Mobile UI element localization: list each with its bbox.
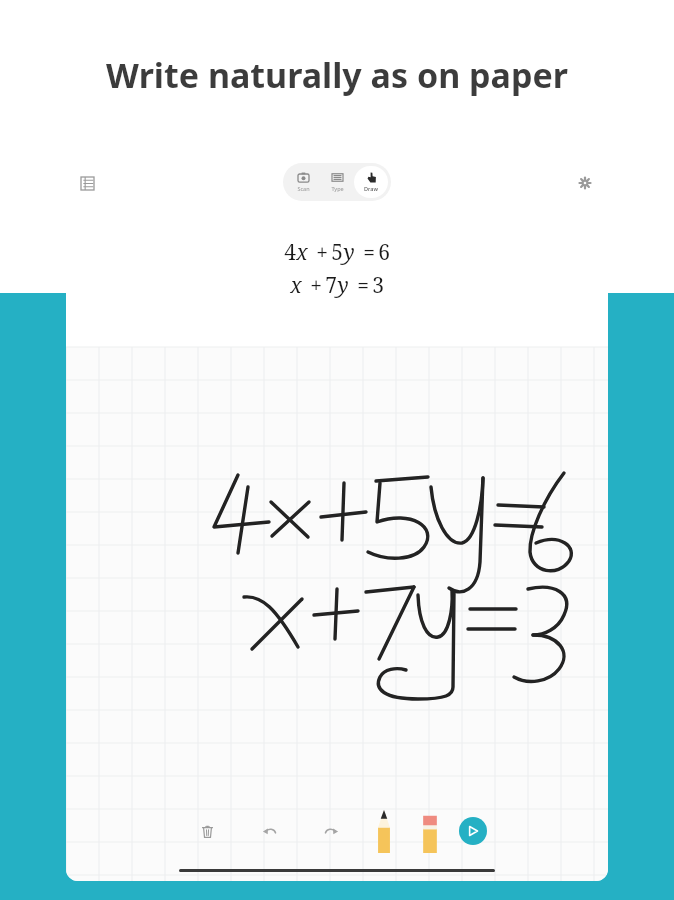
- staticText: y: [337, 271, 349, 300]
- staticText: +: [302, 271, 325, 300]
- staticText: Draw: [364, 185, 378, 192]
- button[interactable]: Eraser: [415, 809, 445, 853]
- staticText: Type: [331, 185, 344, 192]
- button[interactable]: Draw: [354, 166, 388, 198]
- button[interactable]: Settings: [568, 166, 602, 200]
- staticText: +: [308, 238, 331, 267]
- staticText: =: [349, 271, 372, 300]
- staticText: =: [355, 238, 378, 267]
- button[interactable]: Redo: [311, 811, 351, 851]
- button[interactable]: Notes list: [70, 166, 104, 200]
- staticText: y: [343, 238, 355, 267]
- staticText: 6: [378, 238, 390, 267]
- button[interactable]: Scan: [286, 166, 320, 198]
- staticText: Scan: [297, 185, 310, 192]
- button[interactable]: Solve: [459, 817, 487, 845]
- staticText: 4: [284, 238, 296, 267]
- button[interactable]: Pencil: [369, 809, 399, 853]
- staticText: 3: [372, 271, 384, 300]
- button[interactable]: Undo: [249, 811, 289, 851]
- button[interactable]: Type: [320, 166, 354, 198]
- staticText: Write naturally as on paper: [106, 52, 568, 98]
- staticText: x: [290, 271, 302, 300]
- button[interactable]: Delete: [187, 811, 227, 851]
- staticText: x: [296, 238, 308, 267]
- staticText: 5: [331, 238, 343, 267]
- staticText: 7: [325, 271, 337, 300]
